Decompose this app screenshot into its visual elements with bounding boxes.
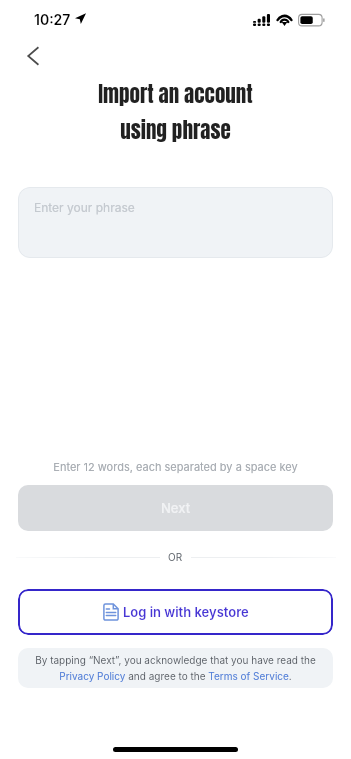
staticText: 10:27 (34, 11, 71, 28)
staticText: By tapping “Next”, you acknowledge that … (33, 654, 318, 682)
button[interactable]: Log in with keystore (18, 589, 333, 635)
staticText: OR (168, 551, 183, 563)
button[interactable]: Next (18, 485, 333, 531)
button[interactable]: Enter your phrase (18, 187, 333, 258)
button[interactable]: Back (13, 36, 53, 76)
staticText: Next (161, 500, 191, 516)
staticText: Log in with keystore (123, 604, 249, 620)
staticText: Import an account using phrase (0, 78, 351, 146)
staticText: Enter your phrase (34, 200, 135, 215)
staticText: Enter 12 words, each separated by a spac… (0, 460, 351, 473)
